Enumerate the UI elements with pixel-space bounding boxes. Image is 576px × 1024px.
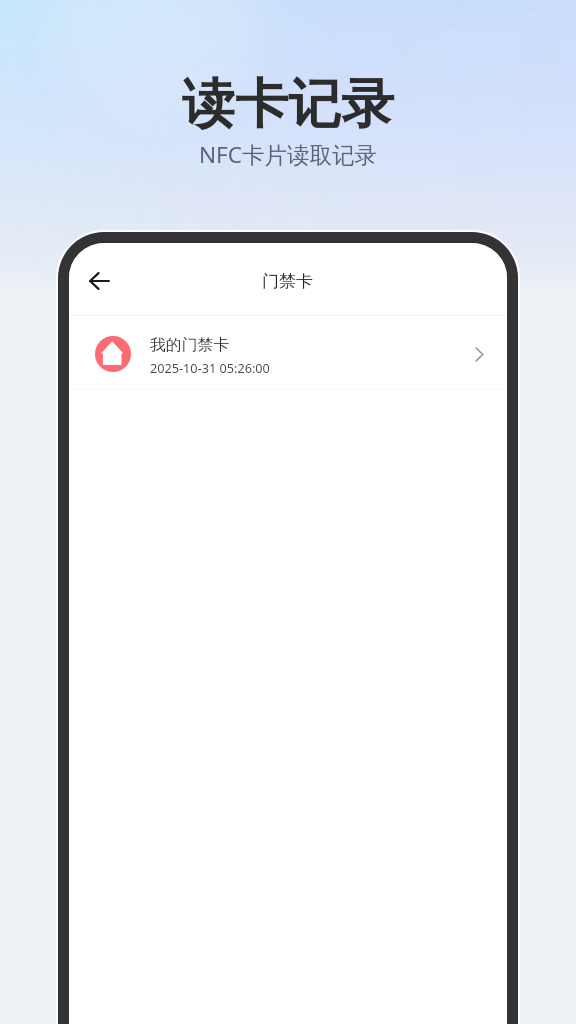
staticText: 读卡记录	[182, 71, 394, 138]
button[interactable]: Back	[77, 259, 121, 303]
staticText: 门禁卡	[262, 271, 313, 292]
staticText: NFC卡片读取记录	[199, 139, 377, 170]
button[interactable]: 我的门禁卡	[69, 316, 507, 389]
staticText: 2025-10-31 05:26:00	[150, 359, 270, 376]
staticText: 我的门禁卡	[150, 335, 229, 355]
